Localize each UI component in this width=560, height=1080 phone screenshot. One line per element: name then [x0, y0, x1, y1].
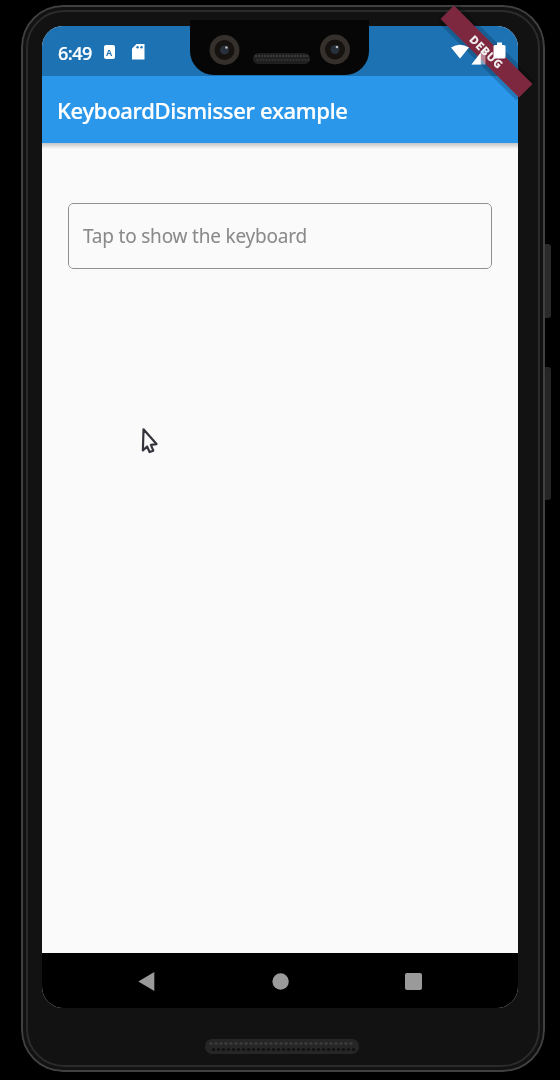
button[interactable]	[392, 960, 436, 1004]
staticText: Tap to show the keyboard	[83, 223, 308, 249]
staticText: A	[106, 46, 113, 58]
button[interactable]	[124, 960, 168, 1004]
staticText: DEBUG	[467, 32, 507, 72]
button[interactable]: Tap to show the keyboard	[68, 203, 492, 269]
button[interactable]	[259, 960, 303, 1004]
staticText: 6:49	[58, 41, 92, 66]
staticText: KeyboardDismisser example	[57, 95, 348, 125]
